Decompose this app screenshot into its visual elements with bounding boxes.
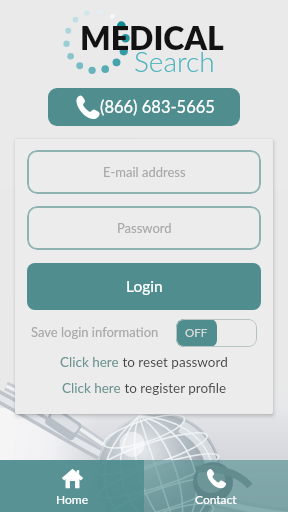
- staticText: Click here: [62, 380, 121, 396]
- staticText: to register profile: [121, 380, 227, 396]
- staticText: Contact: [195, 492, 237, 506]
- button[interactable]: Click here: [15, 380, 273, 396]
- staticText: OFF: [185, 326, 208, 340]
- staticText: MEDICAL: [80, 18, 224, 56]
- button[interactable]: OFF: [176, 319, 257, 347]
- button[interactable]: Home: [0, 460, 144, 512]
- button[interactable]: Contact: [144, 460, 288, 512]
- staticText: E-mail address: [103, 164, 186, 180]
- button[interactable]: Click here: [15, 354, 273, 370]
- staticText: Search: [134, 44, 215, 78]
- staticText: to reset password: [119, 354, 228, 370]
- staticText: Click here: [60, 354, 119, 370]
- staticText: Save login information: [31, 324, 159, 340]
- button[interactable]: Password: [27, 206, 261, 250]
- staticText: Password: [117, 220, 172, 236]
- button[interactable]: (866) 683-5665: [48, 88, 240, 126]
- staticText: Home: [56, 492, 88, 506]
- button[interactable]: E-mail address: [27, 150, 261, 194]
- staticText: (866) 683-5665: [100, 97, 215, 117]
- button[interactable]: Login: [27, 263, 261, 310]
- staticText: Login: [126, 277, 163, 296]
